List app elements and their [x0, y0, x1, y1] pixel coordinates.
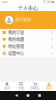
button[interactable]: 我的收藏	[0, 36, 56, 43]
button[interactable]: 分类	[14, 81, 28, 91]
button[interactable]: 首页	[0, 81, 14, 91]
staticText: 地址管理	[8, 43, 24, 49]
staticText: 设置中心	[8, 50, 24, 56]
staticText: 12:00	[43, 0, 51, 4]
button[interactable]: 设置中心	[0, 50, 56, 57]
staticText: 我的收藏	[8, 36, 24, 42]
button[interactable]: 我的订单	[0, 29, 56, 36]
button[interactable]: Recent apps	[34, 91, 45, 100]
button[interactable]: 我的	[42, 81, 56, 91]
staticText: 分类	[18, 86, 24, 90]
staticText: 我的	[46, 86, 52, 90]
button[interactable]: Home	[22, 91, 34, 100]
staticText: 个人中心	[18, 4, 38, 11]
staticText: 首页	[4, 86, 10, 90]
button[interactable]: Back	[11, 91, 22, 100]
staticText: 购物车	[30, 86, 39, 90]
staticText: 我的订单	[8, 29, 24, 35]
button[interactable]: 地址管理	[0, 43, 56, 50]
button[interactable]: 购物车	[28, 81, 42, 91]
staticText: 用户昵称	[15, 17, 31, 23]
